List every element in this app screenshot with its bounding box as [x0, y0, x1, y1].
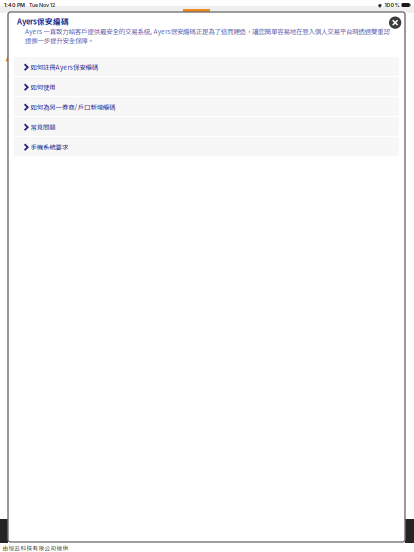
staticText: 常見問題 [30, 122, 55, 132]
staticText: 手機系統要求 [30, 142, 68, 152]
staticText: 如何使用 [30, 82, 55, 92]
button[interactable]: 常見問題 [14, 117, 399, 136]
button[interactable]: 如何為另一券商/戶口新增編碼 [14, 97, 399, 116]
staticText: Ayers 一直致力給客戶提供最安全的交易系統, Ayers保安編碼正是為了這而… [25, 26, 390, 45]
button[interactable]: 如何註冊Ayers保安編碼 [14, 57, 399, 76]
staticText: 100% [384, 2, 399, 8]
staticText: Tue Nov 12 [29, 2, 55, 8]
staticText: 由恒云科技有限公司提供 [2, 544, 68, 552]
staticText: 1:40 PM [4, 2, 25, 8]
staticText: Ayers保安編碼 [17, 15, 69, 27]
staticText: 如何為另一券商/戶口新增編碼 [30, 102, 115, 112]
button[interactable]: Close [389, 16, 401, 29]
staticText: 如何註冊Ayers保安編碼 [30, 62, 98, 72]
button[interactable]: 手機系統要求 [14, 137, 399, 156]
button[interactable]: 如何使用 [14, 77, 399, 96]
